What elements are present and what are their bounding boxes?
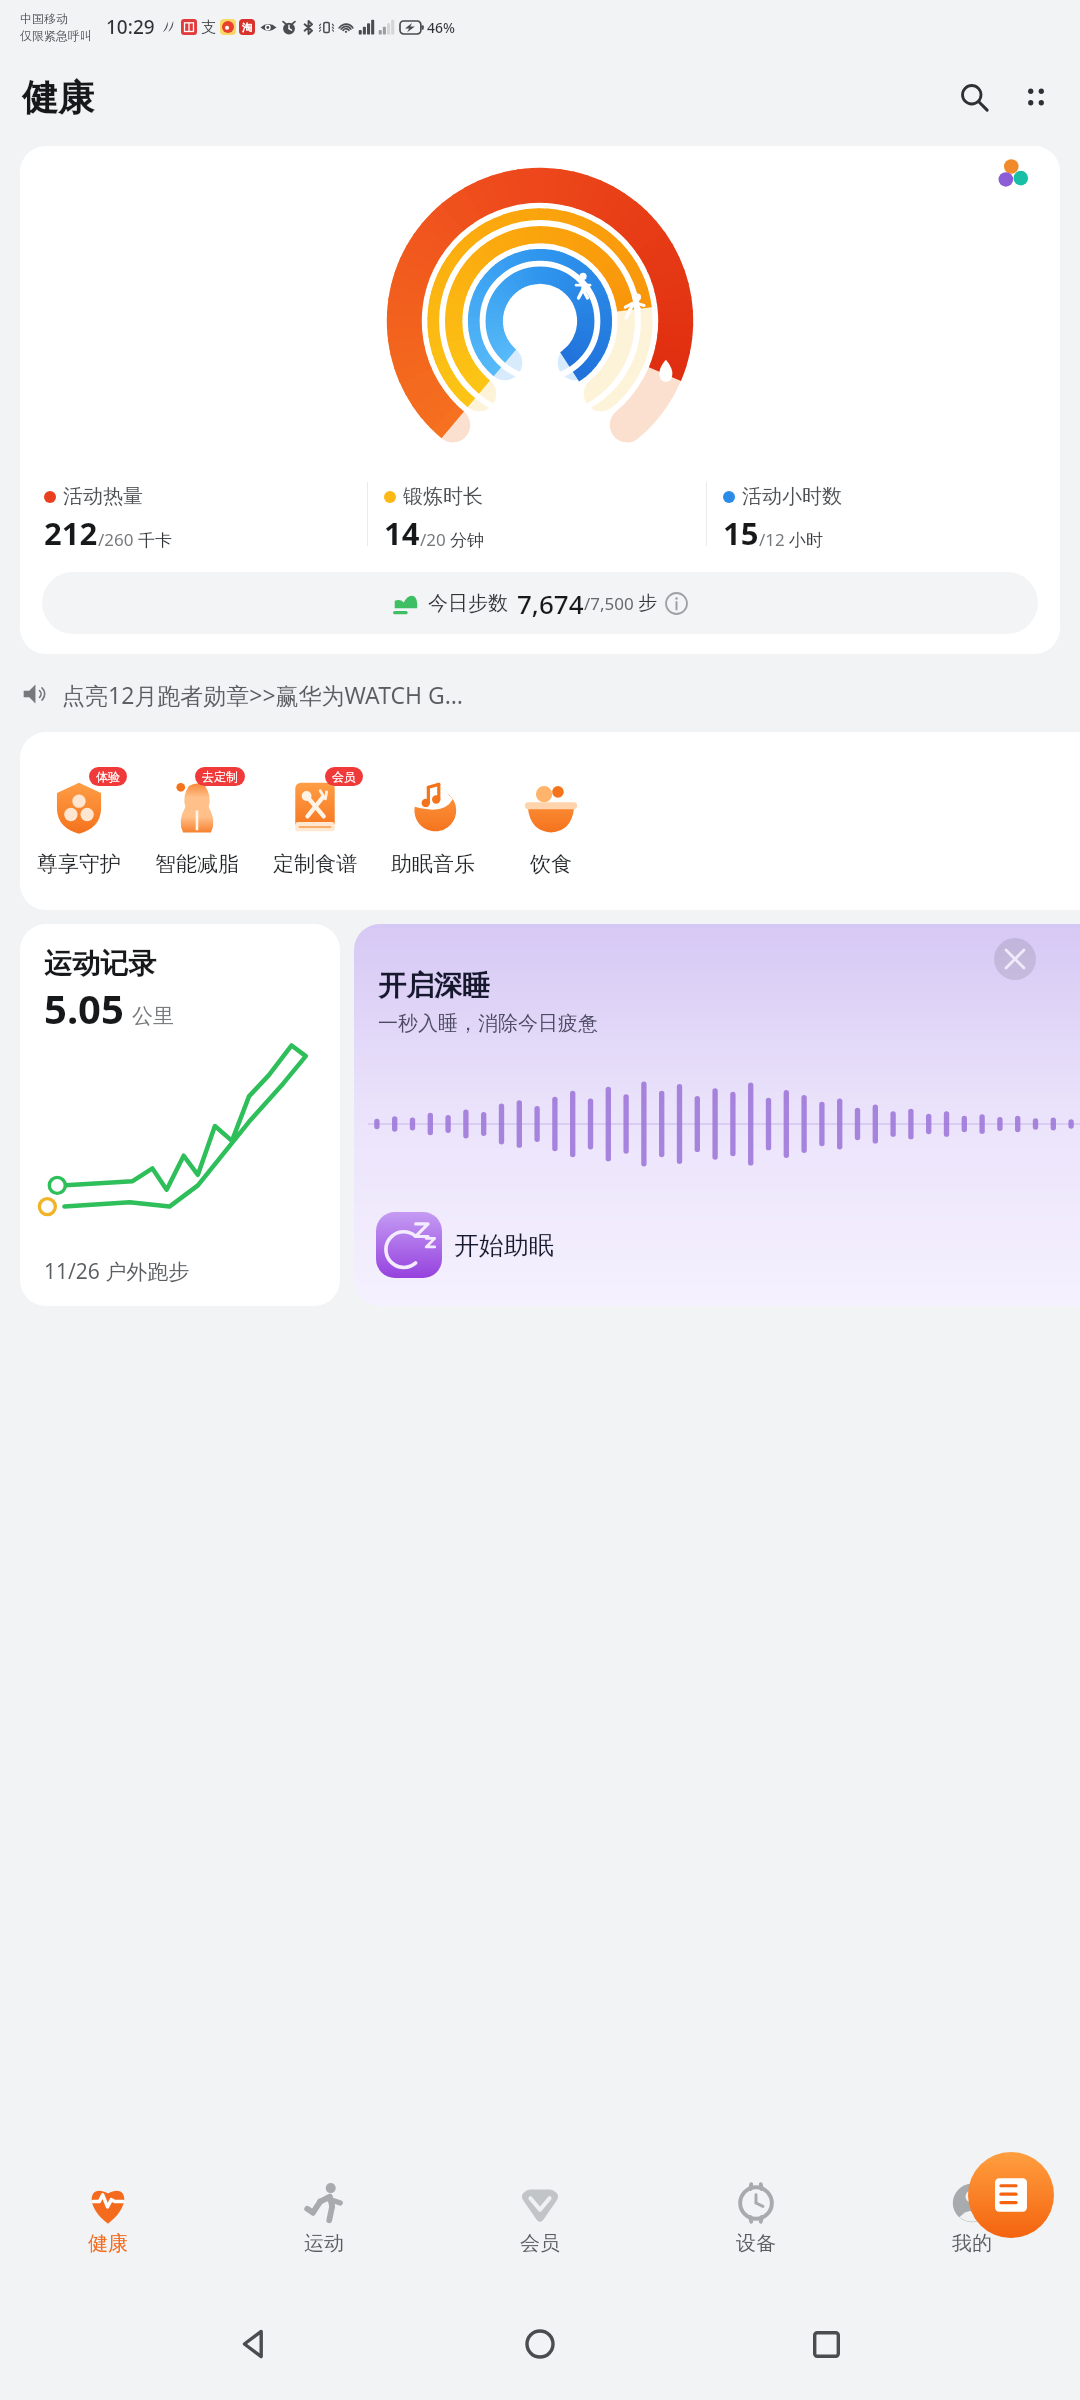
- other: Announcement: [22, 680, 50, 708]
- staticText: 千卡: [138, 530, 172, 551]
- button[interactable]: 体验: [20, 732, 138, 910]
- staticText: /7,500: [584, 592, 634, 615]
- button[interactable]: 活动热量: [22, 482, 367, 554]
- button[interactable]: More options: [1010, 71, 1062, 123]
- staticText: 步: [638, 591, 657, 615]
- staticText: 定制食谱: [273, 851, 357, 877]
- staticText: 公里: [132, 1003, 174, 1029]
- staticText: 10:29: [106, 14, 155, 40]
- staticText: 今日步数: [428, 591, 508, 616]
- button[interactable]: 设备: [648, 2146, 864, 2288]
- staticText: /12: [759, 528, 785, 551]
- button[interactable]: 运动: [216, 2146, 432, 2288]
- staticText: 健康: [88, 2231, 128, 2256]
- button[interactable]: 活动热量: [20, 146, 1060, 654]
- staticText: 开始助眠: [454, 1230, 554, 1261]
- button[interactable]: Announcement: [22, 666, 1058, 722]
- staticText: 支: [201, 18, 216, 37]
- button[interactable]: 锻炼时长: [368, 482, 706, 554]
- staticText: 运动记录: [44, 946, 156, 981]
- staticText: 7,674: [517, 586, 584, 621]
- staticText: 会员: [332, 769, 356, 784]
- button[interactable]: 开启深睡: [354, 924, 1080, 1306]
- button[interactable]: 我的: [864, 2146, 1080, 2288]
- staticText: 46%: [427, 18, 455, 37]
- button[interactable]: Close: [994, 938, 1036, 980]
- staticText: 212: [44, 512, 98, 554]
- staticText: 分钟: [450, 530, 484, 551]
- staticText: 健康: [22, 75, 94, 120]
- button[interactable]: Health services: [968, 146, 1060, 202]
- staticText: 智能减脂: [155, 851, 239, 877]
- staticText: 小时: [789, 530, 823, 551]
- staticText: 一秒入睡，消除今日疲惫: [378, 1011, 598, 1036]
- button[interactable]: 活动小时数: [707, 482, 1058, 554]
- staticText: 我的: [952, 2231, 992, 2256]
- staticText: 仅限紧急呼叫: [20, 28, 92, 43]
- staticText: 淘: [242, 21, 252, 34]
- button[interactable]: Home: [508, 2312, 572, 2376]
- button[interactable]: Search: [948, 71, 1000, 123]
- staticText: 中国移动: [20, 11, 68, 26]
- button[interactable]: 今日步数: [42, 572, 1038, 634]
- button[interactable]: 助眠音乐: [374, 732, 492, 910]
- staticText: 14: [384, 512, 420, 554]
- button[interactable]: 会员: [256, 732, 374, 910]
- staticText: 助眠音乐: [391, 851, 475, 877]
- button[interactable]: 饮食: [492, 732, 610, 910]
- staticText: 活动热量: [63, 484, 143, 509]
- staticText: 5.05: [44, 981, 124, 1035]
- staticText: 活动小时数: [742, 484, 842, 509]
- staticText: /260: [98, 528, 134, 551]
- staticText: 11/26 户外跑步: [44, 1257, 190, 1286]
- staticText: 运动: [304, 2231, 344, 2256]
- staticText: /20: [420, 528, 446, 551]
- button[interactable]: 健康: [0, 2146, 216, 2288]
- staticText: 去定制: [202, 769, 238, 784]
- button[interactable]: 去定制: [138, 732, 256, 910]
- staticText: 饮食: [530, 851, 572, 877]
- staticText: 设备: [736, 2231, 776, 2256]
- staticText: 15: [723, 512, 759, 554]
- staticText: 点亮12月跑者勋章>>赢华为WATCH G…: [62, 679, 464, 710]
- button[interactable]: Back: [222, 2312, 286, 2376]
- staticText: 开启深睡: [378, 968, 490, 1003]
- button[interactable]: Add record: [968, 2152, 1054, 2238]
- button[interactable]: Recents: [794, 2312, 858, 2376]
- staticText: 体验: [96, 769, 120, 784]
- staticText: 锻炼时长: [403, 484, 483, 509]
- button[interactable]: 运动记录: [20, 924, 340, 1306]
- staticText: 尊享守护: [37, 851, 121, 877]
- button[interactable]: 会员: [432, 2146, 648, 2288]
- staticText: 会员: [520, 2231, 560, 2256]
